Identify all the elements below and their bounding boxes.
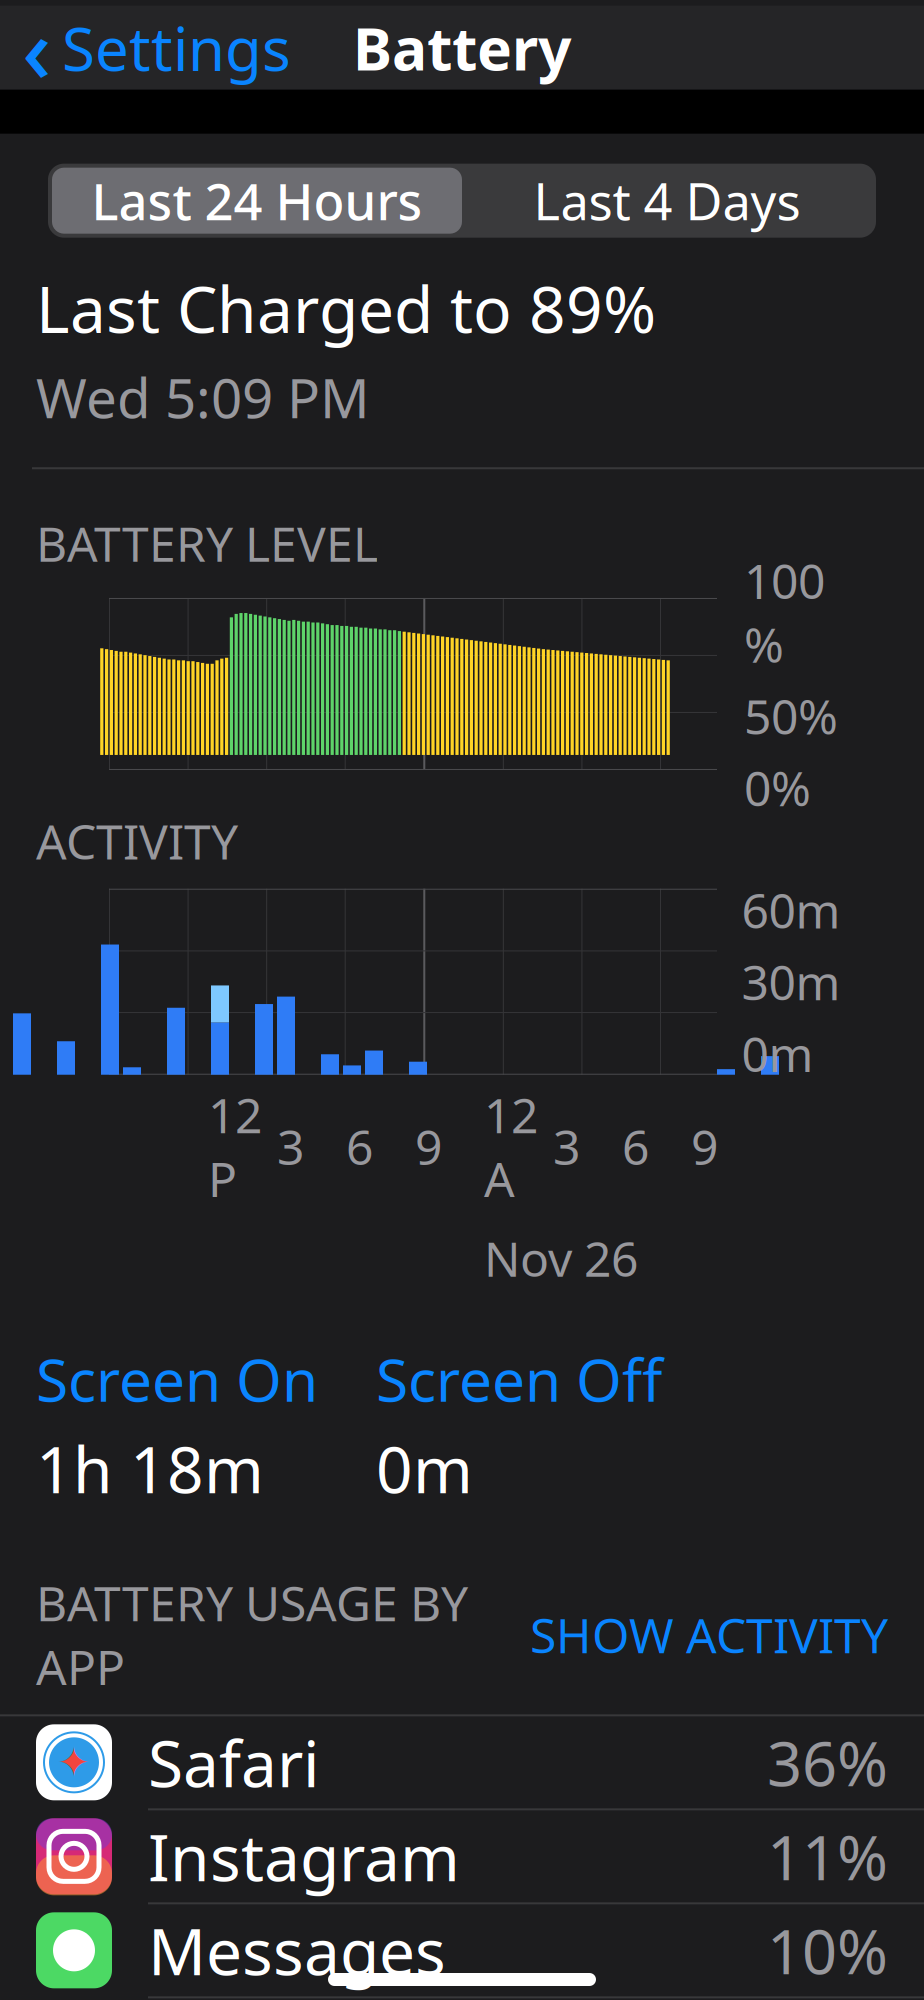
button[interactable]: Instagram	[0, 1808, 924, 1902]
staticText: Last 4 Days	[533, 167, 800, 234]
staticText: SHOW ACTIVITY	[530, 1603, 888, 1666]
staticText: 0%	[744, 756, 811, 819]
staticText: 0m	[741, 1022, 813, 1085]
staticText: 9	[415, 1115, 442, 1178]
staticText: ACTIVITY	[36, 809, 238, 873]
staticText: Messages	[148, 1908, 446, 1993]
button[interactable]: ✦	[0, 1716, 924, 1808]
staticText: Instagram	[148, 1814, 460, 1899]
staticText: 50%	[744, 684, 838, 748]
staticText: 11%	[767, 1816, 888, 1897]
staticText: Wed 5:09 PM	[36, 361, 370, 433]
staticText: 6	[346, 1115, 373, 1178]
staticText: Battery	[353, 9, 571, 87]
staticText: 3	[277, 1115, 304, 1178]
button[interactable]: Spotify	[0, 1996, 924, 2000]
staticText: Safari	[148, 1720, 320, 1805]
staticText: 12 A	[484, 1083, 538, 1210]
button[interactable]: ‹	[0, 0, 309, 114]
staticText: Screen Off	[376, 1340, 662, 1418]
staticText: 9	[691, 1115, 718, 1178]
staticText: 100%	[744, 548, 825, 676]
staticText: 3	[553, 1115, 580, 1178]
staticText: Nov 26	[484, 1226, 638, 1290]
staticText: 30m	[741, 950, 840, 1014]
staticText: 1h 18m	[36, 1426, 264, 1511]
staticText: ✦	[57, 1740, 91, 1785]
staticText: 6	[622, 1115, 649, 1178]
button[interactable]: Last 4 Days	[462, 168, 872, 234]
staticText: 0m	[376, 1426, 473, 1511]
staticText: BATTERY LEVEL	[36, 511, 378, 575]
button[interactable]: Last 24 Hours	[52, 168, 462, 234]
staticText: 60m	[741, 878, 840, 942]
staticText: BATTERY USAGE BY APP	[36, 1571, 468, 1698]
staticText: 36%	[767, 1722, 888, 1803]
button[interactable]: SHOW ACTIVITY	[530, 1603, 888, 1666]
staticText: Settings	[62, 8, 291, 87]
staticText: Screen On	[36, 1340, 318, 1418]
staticText: 10%	[767, 1910, 888, 1991]
staticText: Last Charged to 89%	[36, 266, 656, 351]
button[interactable]: Screen Off	[376, 1340, 662, 1418]
staticText: ‹	[22, 0, 52, 108]
staticText: Last 24 Hours	[91, 167, 422, 234]
staticText: 12 P	[208, 1083, 262, 1210]
button[interactable]: Screen On	[36, 1340, 318, 1418]
button[interactable]: Messages	[0, 1902, 924, 1996]
